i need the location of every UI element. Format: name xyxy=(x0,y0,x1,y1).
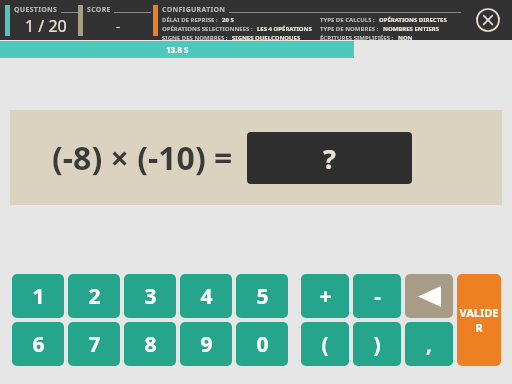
staticText: OPÉRATIONS DIRECTES xyxy=(379,16,447,24)
staticText: OPÉRATIONS SELECTIONNEES : xyxy=(162,25,253,33)
button[interactable]: ? xyxy=(247,132,412,184)
staticText: 2 xyxy=(88,282,101,311)
button[interactable]: 4 xyxy=(180,274,232,318)
staticText: ) xyxy=(373,330,381,359)
button[interactable]: + xyxy=(301,274,349,318)
button[interactable]: 6 xyxy=(12,322,64,366)
button[interactable]: 9 xyxy=(180,322,232,366)
button[interactable]: Backspace xyxy=(405,274,453,318)
staticText: - xyxy=(374,282,381,311)
button[interactable]: 8 xyxy=(124,322,176,366)
staticText: QUESTIONS xyxy=(14,5,58,15)
staticText: 4 xyxy=(200,282,213,311)
button[interactable]: ) xyxy=(353,322,401,366)
button[interactable]: VALIDER xyxy=(457,274,501,366)
staticText: ( xyxy=(321,330,329,359)
staticText: 0 xyxy=(256,330,269,359)
staticText: SIGNE DES NOMBRES : xyxy=(162,34,228,42)
staticText: 13.8 S xyxy=(166,44,189,55)
staticText: NOMBRES ENTIERS xyxy=(383,25,440,33)
staticText: + xyxy=(319,282,332,311)
button[interactable]: 0 xyxy=(236,322,288,366)
staticText: 3 xyxy=(144,282,157,311)
button[interactable]: 5 xyxy=(236,274,288,318)
staticText: VALIDER xyxy=(457,305,501,335)
button[interactable]: 3 xyxy=(124,274,176,318)
staticText: 1 / 20 xyxy=(25,15,67,37)
staticText: CONFIGURATION xyxy=(162,5,226,15)
staticText: DÉLAI DE REPRISE : xyxy=(162,16,218,24)
staticText: ÉCRITURES SIMPLIFIÉES : xyxy=(320,34,394,42)
staticText: 20 S xyxy=(222,16,234,24)
staticText: SIGNES QUELCONQUES xyxy=(232,34,301,42)
staticText: - xyxy=(116,17,121,35)
button[interactable]: 2 xyxy=(68,274,120,318)
button[interactable]: , xyxy=(405,322,453,366)
staticText: TYPE DE CALCULS : xyxy=(320,16,375,24)
staticText: TYPE DE NOMBRES : xyxy=(320,25,379,33)
staticText: ? xyxy=(323,140,336,177)
staticText: (-8) × (-10) = xyxy=(52,136,233,180)
staticText: , xyxy=(426,330,432,359)
button[interactable]: Close xyxy=(475,7,501,33)
staticText: LES 4 OPÉRATIONS xyxy=(257,25,312,33)
staticText: 7 xyxy=(88,330,101,359)
button[interactable]: 1 xyxy=(12,274,64,318)
staticText: SCORE xyxy=(87,5,111,15)
button[interactable]: ( xyxy=(301,322,349,366)
staticText: 8 xyxy=(144,330,157,359)
staticText: 1 xyxy=(32,282,45,311)
staticText: 5 xyxy=(256,282,269,311)
staticText: NON xyxy=(398,34,413,42)
staticText: 6 xyxy=(32,330,45,359)
button[interactable]: 7 xyxy=(68,322,120,366)
staticText: 9 xyxy=(200,330,213,359)
button[interactable]: - xyxy=(353,274,401,318)
